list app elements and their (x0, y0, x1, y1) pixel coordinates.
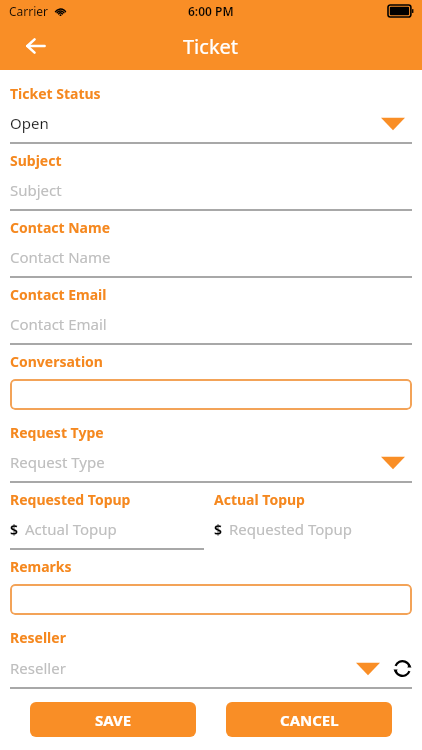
button[interactable]: Subject (0, 147, 422, 214)
staticText: CANCEL (280, 710, 339, 730)
button[interactable]: Conversation (0, 348, 422, 419)
button[interactable]: Request Type (0, 419, 422, 486)
button[interactable]: Open Request Type dropdown (378, 450, 408, 474)
button[interactable]: Requested Topup (0, 486, 204, 553)
staticText: $ (10, 520, 19, 539)
staticText: Remarks (10, 557, 72, 576)
staticText: Subject (10, 180, 62, 200)
staticText: SAVE (95, 710, 132, 730)
staticText: Contact Name (10, 218, 111, 237)
staticText: Requested Topup (10, 490, 131, 509)
staticText: Open (10, 113, 49, 133)
staticText: Reseller (10, 628, 66, 647)
button[interactable]: Refresh resellers (388, 655, 416, 681)
button[interactable]: Reseller (0, 624, 422, 689)
button[interactable]: SAVE (30, 702, 196, 737)
staticText: Contact Name (10, 247, 111, 267)
staticText: $ (214, 520, 223, 539)
button[interactable]: Actual Topup (204, 486, 422, 553)
staticText: Actual Topup (25, 519, 117, 539)
staticText: Ticket (183, 33, 239, 60)
button[interactable]: Contact Name (0, 214, 422, 281)
staticText: Subject (10, 151, 62, 170)
button[interactable]: Open Ticket Status dropdown (378, 111, 408, 135)
button[interactable]: Contact Email (0, 281, 422, 348)
staticText: Reseller (10, 658, 66, 678)
staticText: Request Type (10, 423, 104, 442)
button[interactable]: CANCEL (226, 702, 392, 737)
staticText: Contact Email (10, 285, 107, 304)
staticText: Ticket Status (10, 84, 101, 103)
button[interactable]: Back (16, 26, 56, 66)
staticText: Carrier (9, 3, 49, 19)
button[interactable]: Open Reseller dropdown (353, 655, 383, 681)
staticText: Requested Topup (229, 519, 353, 539)
staticText: Actual Topup (214, 490, 305, 509)
button[interactable]: Ticket Status (0, 80, 422, 147)
staticText: Request Type (10, 452, 105, 472)
staticText: Conversation (10, 352, 103, 371)
staticText: Contact Email (10, 314, 107, 334)
staticText: 6:00 PM (188, 3, 234, 19)
button[interactable]: Remarks (0, 553, 422, 624)
